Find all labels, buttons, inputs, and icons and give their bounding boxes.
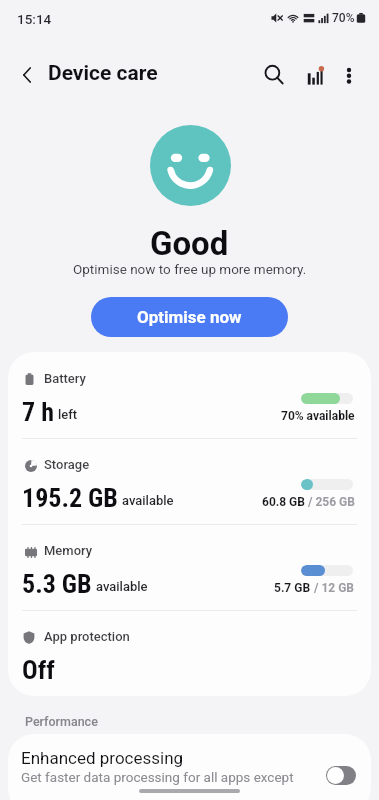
button[interactable]: Usage statistics bbox=[296, 51, 330, 97]
staticText: available bbox=[122, 493, 174, 508]
staticText: Device care bbox=[48, 61, 158, 86]
staticText: Get faster data processing for all apps … bbox=[21, 769, 294, 785]
staticText: 15:14 bbox=[17, 11, 52, 27]
button[interactable]: Memory bbox=[8, 524, 371, 610]
staticText: Good bbox=[150, 224, 229, 263]
button[interactable]: Storage bbox=[8, 438, 371, 524]
staticText: Battery bbox=[44, 371, 86, 386]
staticText: App protection bbox=[44, 629, 130, 644]
staticText: Memory bbox=[44, 543, 93, 558]
button[interactable]: Search bbox=[256, 57, 292, 93]
staticText: 70% available bbox=[281, 409, 355, 423]
staticText: 7 h bbox=[22, 397, 54, 427]
button[interactable]: App protection bbox=[8, 610, 371, 696]
staticText: / 12 GB bbox=[311, 581, 355, 595]
button[interactable]: Optimise now bbox=[91, 297, 288, 337]
staticText: / 256 GB bbox=[305, 495, 355, 509]
button[interactable]: Enhanced processing toggle bbox=[326, 766, 356, 785]
staticText: 5.3 GB bbox=[22, 569, 92, 599]
staticText: Optimise now to free up more memory. bbox=[73, 261, 307, 277]
staticText: 195.2 GB bbox=[22, 483, 118, 513]
staticText: Off bbox=[22, 655, 55, 685]
staticText: Enhanced processing bbox=[21, 748, 184, 768]
staticText: left bbox=[58, 407, 78, 422]
staticText: Optimise now bbox=[137, 307, 242, 327]
staticText: 70% bbox=[332, 11, 355, 25]
button[interactable]: Battery bbox=[8, 352, 371, 438]
staticText: 60.8 GB bbox=[262, 495, 305, 509]
staticText: Performance bbox=[25, 714, 98, 729]
button[interactable]: Navigate up bbox=[10, 58, 44, 92]
staticText: available bbox=[96, 579, 148, 594]
button[interactable]: More options bbox=[332, 51, 366, 97]
staticText: 5.7 GB bbox=[274, 581, 311, 595]
button[interactable]: Enhanced processing bbox=[8, 734, 371, 800]
staticText: Storage bbox=[44, 457, 90, 472]
